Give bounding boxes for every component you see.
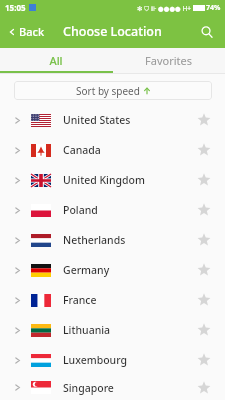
staticText: Netherlands	[63, 233, 126, 247]
button[interactable]: Sort by speed	[14, 81, 212, 100]
button[interactable]: Favorite Canada	[191, 137, 217, 163]
staticText: 74%	[206, 3, 221, 13]
button[interactable]: Germany	[0, 255, 225, 285]
staticText: Choose Location	[63, 23, 162, 40]
button[interactable]: Favorite Netherlands	[191, 227, 217, 253]
staticText: ✻ ⛉ ⊪ ●●●● H+	[137, 4, 191, 13]
staticText: Favorites	[145, 53, 192, 68]
button[interactable]: Netherlands	[0, 225, 225, 255]
staticText: Back	[19, 24, 45, 39]
button[interactable]: United States	[0, 105, 225, 135]
staticText: Poland	[63, 203, 98, 217]
button[interactable]: Favorites	[112, 48, 225, 73]
button[interactable]: Favorite Lithuania	[191, 317, 217, 343]
staticText: Lithuania	[63, 323, 111, 337]
button[interactable]: Luxembourg	[0, 345, 225, 375]
button[interactable]: All	[0, 48, 112, 73]
staticText: All	[49, 53, 63, 68]
staticText: Germany	[63, 263, 110, 277]
staticText: Singapore	[63, 381, 114, 395]
button[interactable]: Lithuania	[0, 315, 225, 345]
button[interactable]: Canada	[0, 135, 225, 165]
button[interactable]: Favorite Singapore	[191, 375, 217, 400]
staticText: United States	[63, 113, 131, 127]
button[interactable]: France	[0, 285, 225, 315]
staticText: 15:05	[5, 2, 26, 13]
button[interactable]: United Kingdom	[0, 165, 225, 195]
staticText: Canada	[63, 143, 101, 157]
staticText: Sort by speed	[76, 84, 140, 98]
button[interactable]: Poland	[0, 195, 225, 225]
button[interactable]: Favorite Germany	[191, 257, 217, 283]
button[interactable]: Favorite Luxembourg	[191, 347, 217, 373]
button[interactable]: Search	[194, 19, 220, 45]
button[interactable]: Favorite United States	[191, 107, 217, 133]
staticText: United Kingdom	[63, 173, 145, 187]
button[interactable]: Back	[0, 18, 53, 45]
button[interactable]: Singapore	[0, 375, 225, 400]
staticText: Luxembourg	[63, 353, 128, 367]
button[interactable]: Favorite France	[191, 287, 217, 313]
button[interactable]: Favorite United Kingdom	[191, 167, 217, 193]
button[interactable]: Favorite Poland	[191, 197, 217, 223]
staticText: France	[63, 293, 97, 307]
